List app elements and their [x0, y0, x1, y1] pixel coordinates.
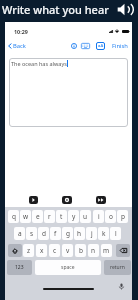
button[interactable]: return: [104, 260, 131, 275]
staticText: Finish: [112, 42, 128, 50]
staticText: f: [54, 229, 57, 238]
staticText: n: [91, 246, 96, 255]
button[interactable]: Finish: [112, 42, 128, 50]
button[interactable]: 123: [7, 260, 32, 275]
staticText: m: [103, 246, 110, 255]
staticText: t: [60, 212, 63, 221]
button[interactable]: c: [49, 244, 60, 257]
staticText: 10:29: [14, 28, 28, 35]
button[interactable]: w: [20, 210, 31, 223]
button[interactable]: Backspace: [116, 244, 130, 257]
button[interactable]: Shift: [8, 244, 22, 257]
button[interactable]: m: [101, 244, 112, 257]
button[interactable]: p: [117, 210, 128, 223]
button[interactable]: t: [56, 210, 67, 223]
button[interactable]: i: [93, 210, 104, 223]
button[interactable]: Info: [69, 41, 79, 51]
staticText: y: [72, 212, 76, 221]
button[interactable]: space: [35, 260, 101, 275]
staticText: d: [42, 229, 46, 238]
button[interactable]: v: [62, 244, 73, 257]
button[interactable]: l: [110, 227, 121, 240]
staticText: e: [36, 212, 40, 221]
button[interactable]: u: [80, 210, 91, 223]
button[interactable]: h: [74, 227, 85, 240]
button[interactable]: s: [26, 227, 37, 240]
button[interactable]: slow play: [62, 196, 72, 204]
staticText: o: [109, 212, 113, 221]
staticText: c: [53, 246, 57, 255]
staticText: p: [121, 212, 125, 221]
button[interactable]: j: [86, 227, 97, 240]
button[interactable]: d: [38, 227, 49, 240]
button[interactable]: y: [68, 210, 79, 223]
button[interactable]: aA: [96, 42, 105, 50]
button[interactable]: k: [98, 227, 109, 240]
staticText: k: [102, 229, 106, 238]
staticText: a: [18, 229, 22, 238]
button[interactable]: x: [36, 244, 47, 257]
staticText: z: [27, 246, 31, 255]
staticText: u: [83, 212, 88, 221]
staticText: q: [12, 212, 16, 221]
staticText: aA: [98, 43, 104, 49]
staticText: x: [40, 246, 44, 255]
button[interactable]: Keyboard: [80, 41, 90, 51]
staticText: l: [115, 229, 117, 238]
button[interactable]: e: [32, 210, 43, 223]
staticText: v: [66, 246, 70, 255]
button[interactable]: b: [75, 244, 86, 257]
button[interactable]: fast forward: [96, 196, 106, 204]
button[interactable]: z: [23, 244, 34, 257]
button[interactable]: q: [8, 210, 19, 223]
button[interactable]: g: [62, 227, 73, 240]
button[interactable]: Dictate: [117, 282, 126, 291]
button[interactable]: Back: [8, 42, 26, 50]
button[interactable]: r: [44, 210, 55, 223]
staticText: Back: [13, 42, 26, 50]
button[interactable]: a: [14, 227, 25, 240]
button[interactable]: n: [88, 244, 99, 257]
staticText: g: [66, 229, 70, 238]
staticText: i: [98, 212, 100, 221]
staticText: r: [48, 212, 51, 221]
staticText: return: [110, 264, 125, 271]
staticText: h: [77, 229, 82, 238]
staticText: s: [30, 229, 34, 238]
button[interactable]: play: [29, 196, 38, 204]
staticText: The ocean has always: [11, 60, 67, 67]
staticText: b: [79, 246, 83, 255]
staticText: 123: [15, 264, 24, 271]
staticText: w: [23, 212, 29, 221]
staticText: j: [91, 229, 93, 238]
staticText: space: [61, 264, 75, 271]
staticText: Write what you hear: [2, 2, 109, 17]
button[interactable]: f: [50, 227, 61, 240]
button[interactable]: o: [105, 210, 116, 223]
